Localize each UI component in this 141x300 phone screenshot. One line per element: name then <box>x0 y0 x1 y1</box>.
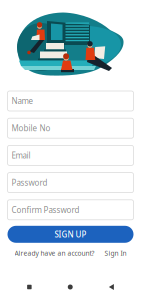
staticText: Mobile No <box>11 123 50 133</box>
button[interactable]: Back <box>100 275 123 299</box>
button[interactable]: SIGN UP <box>0 226 141 243</box>
button[interactable]: Already have an account? <box>14 243 126 264</box>
staticText: Sign In <box>104 249 126 258</box>
staticText: Name <box>11 96 33 106</box>
staticText: Already have an account? <box>14 249 94 258</box>
staticText: Email <box>11 150 30 161</box>
staticText: SIGN UP <box>54 229 86 240</box>
staticText: Password <box>11 177 47 188</box>
staticText: Confirm Password <box>11 204 79 215</box>
button[interactable]: Home <box>59 275 82 298</box>
button[interactable]: Recent apps <box>18 276 41 298</box>
